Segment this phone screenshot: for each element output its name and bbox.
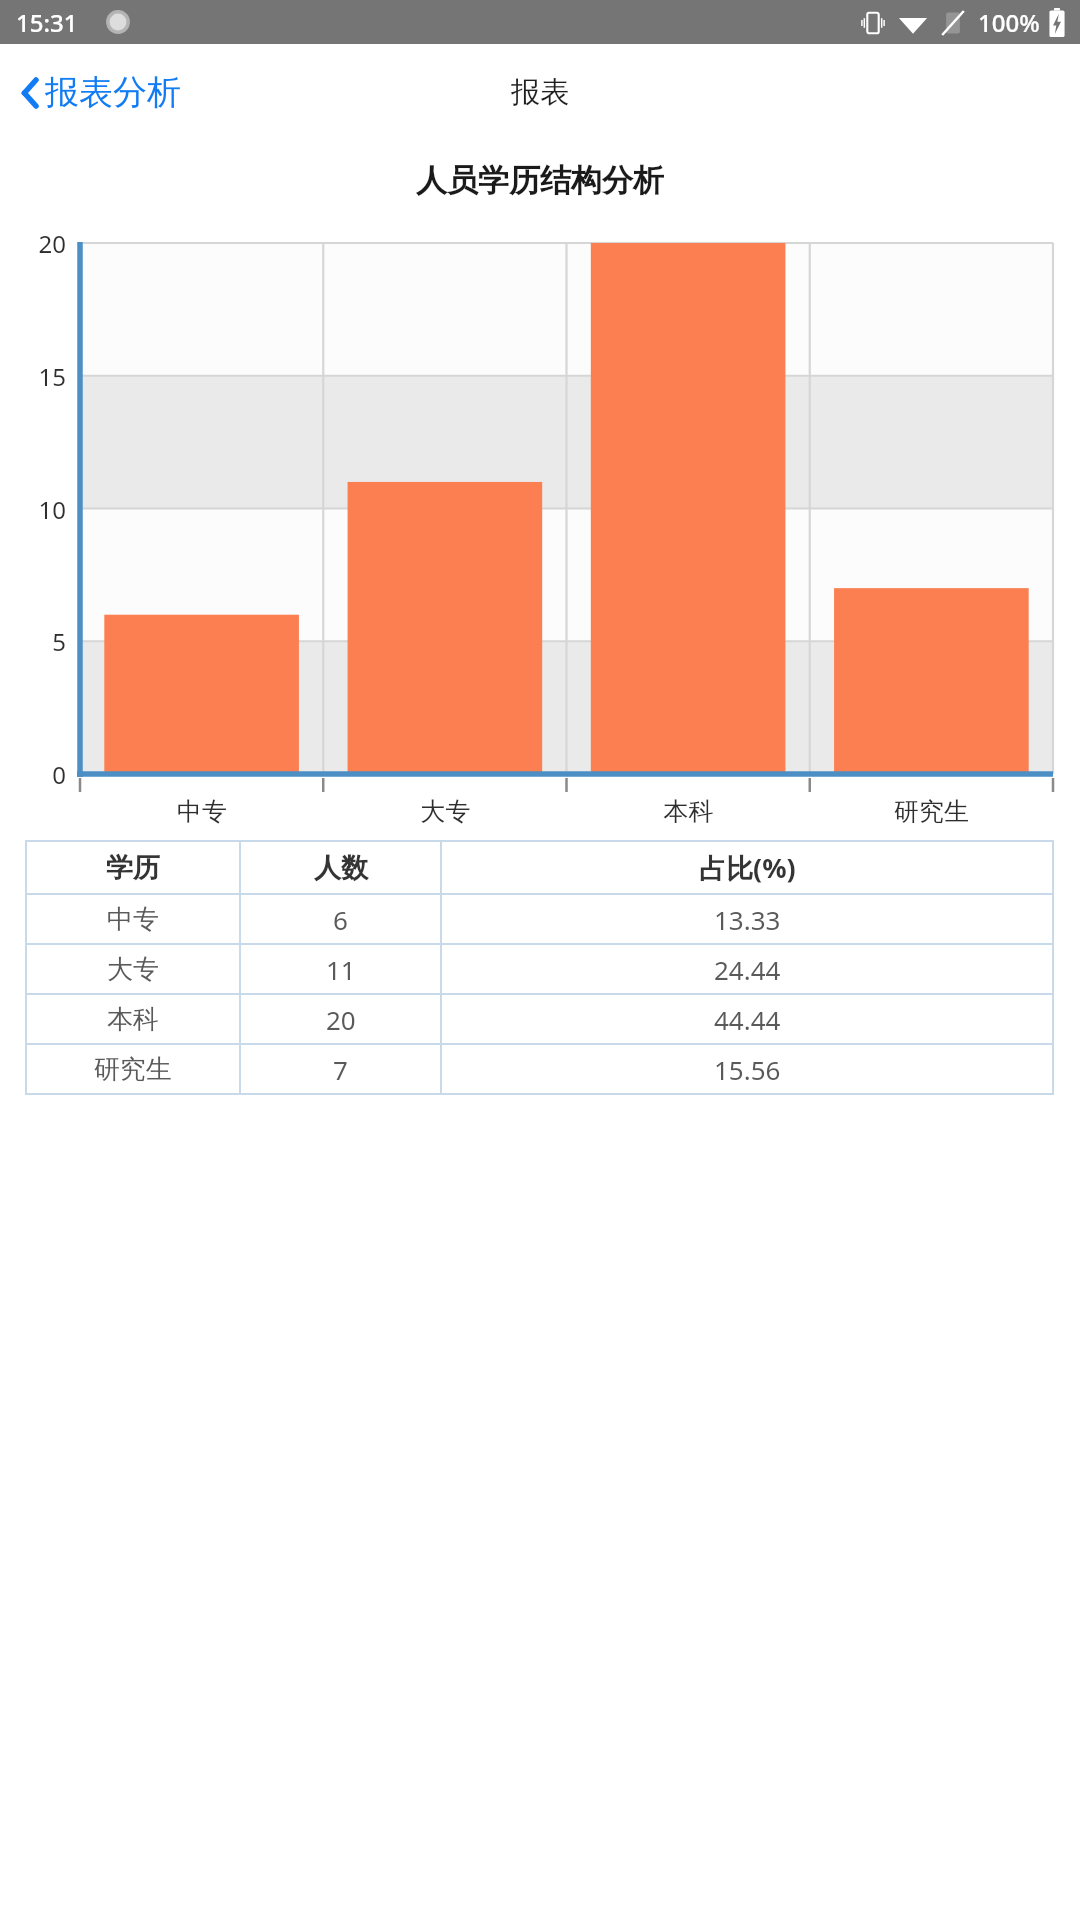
button[interactable]: 中专 [25, 895, 1054, 943]
staticText: 11 [326, 952, 356, 987]
staticText: 24.44 [714, 952, 781, 987]
staticText: 中专 [80, 796, 324, 827]
staticText: 人数 [314, 851, 368, 885]
staticText: 大专 [324, 796, 567, 827]
staticText: 10 [0, 493, 66, 526]
button[interactable]: 返回 [0, 57, 201, 128]
button[interactable]: 大专 [25, 945, 1054, 993]
staticText: 报表 [511, 74, 569, 111]
staticText: 100% [978, 6, 1040, 39]
other: 返回 [20, 75, 40, 111]
button[interactable]: 研究生 [25, 1045, 1054, 1093]
staticText: 人员学历结构分析 [416, 161, 664, 200]
staticText: 占比(%) [699, 849, 796, 886]
staticText: 6 [333, 902, 348, 937]
staticText: 学历 [106, 851, 160, 885]
staticText: 研究生 [810, 796, 1053, 827]
button[interactable]: 学历 [25, 842, 1054, 893]
staticText: 15 [0, 360, 66, 393]
staticText: 15.56 [714, 1052, 781, 1087]
staticText: 20 [0, 227, 66, 260]
staticText: 7 [333, 1052, 348, 1087]
staticText: 15:31 [16, 6, 78, 39]
button[interactable]: 本科 [25, 995, 1054, 1043]
staticText: 本科 [107, 1003, 159, 1036]
staticText: 研究生 [94, 1053, 172, 1086]
staticText: 20 [326, 1002, 356, 1037]
staticText: 本科 [567, 796, 810, 827]
staticText: 44.44 [714, 1002, 781, 1037]
staticText: 大专 [107, 953, 159, 986]
staticText: 报表分析 [45, 71, 181, 114]
staticText: 5 [0, 625, 66, 658]
staticText: 0 [0, 758, 66, 791]
staticText: 中专 [107, 903, 159, 936]
staticText: 13.33 [714, 902, 781, 937]
